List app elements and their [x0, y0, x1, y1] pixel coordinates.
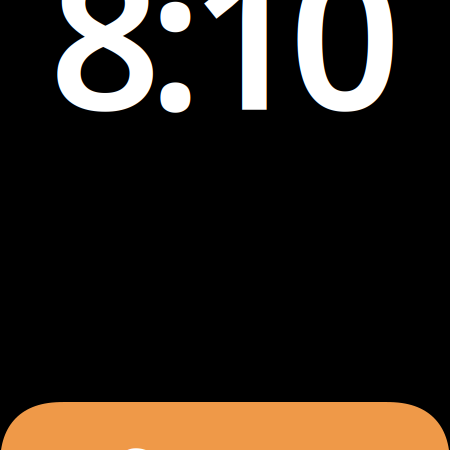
staticText: 8:10 [49, 0, 400, 163]
staticText: Snooze [118, 428, 332, 450]
button[interactable]: Snooze [0, 402, 450, 450]
